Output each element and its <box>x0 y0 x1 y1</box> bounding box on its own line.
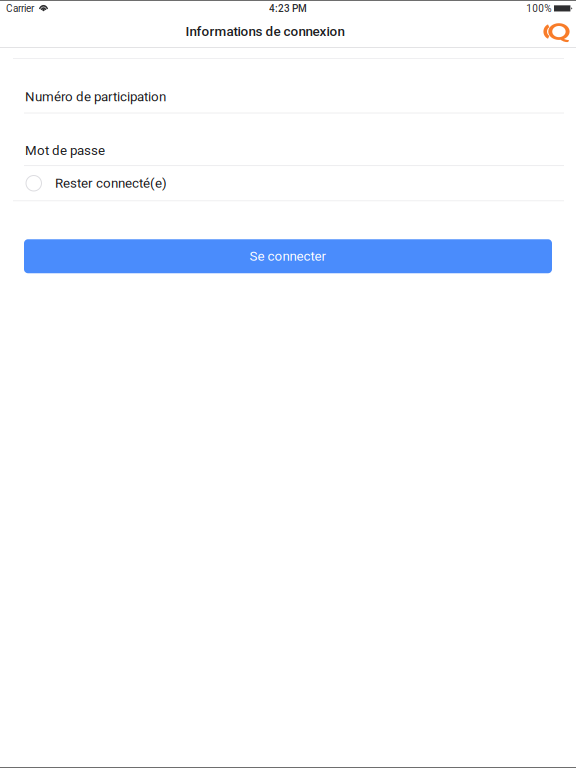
staticText: Rester connecté(e) <box>55 175 167 191</box>
staticText: Numéro de participation <box>25 89 166 105</box>
staticText: Mot de passe <box>25 143 105 158</box>
button[interactable]: Rester connecté(e) <box>0 166 576 200</box>
staticText: Carrier <box>6 3 34 14</box>
button[interactable]: Numéro de participation <box>0 59 576 113</box>
button[interactable]: Q menu <box>536 20 576 48</box>
button[interactable]: Mot de passe <box>0 114 576 165</box>
staticText: Informations de connexion <box>185 24 344 39</box>
staticText: 4:23 PM <box>269 3 307 14</box>
staticText: 100% <box>526 3 551 14</box>
button[interactable]: Se connecter <box>24 239 552 273</box>
staticText: Se connecter <box>249 248 326 264</box>
